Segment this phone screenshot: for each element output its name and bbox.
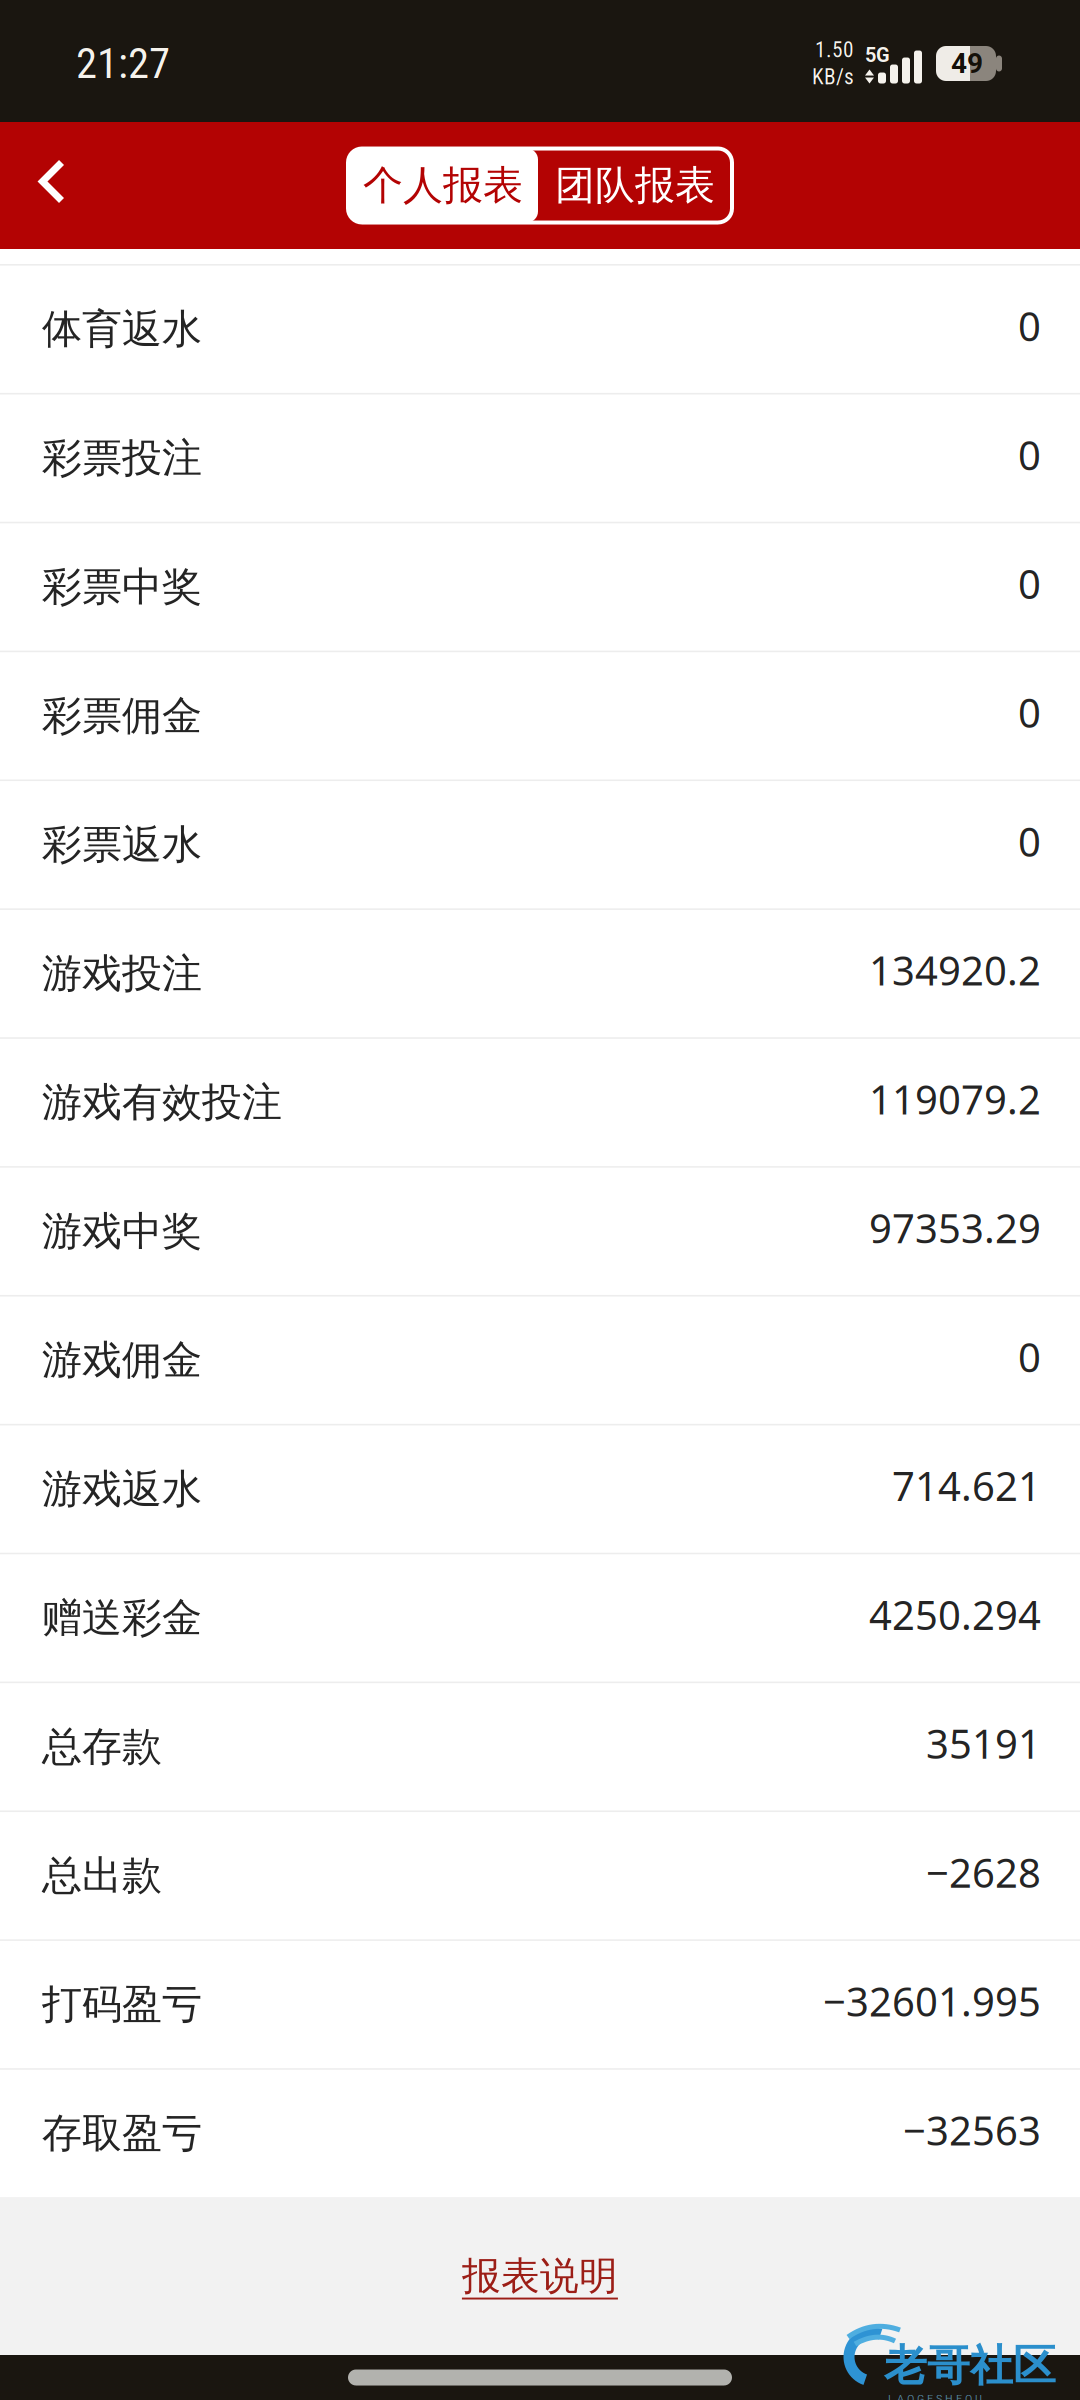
staticText: 119079.2 — [869, 1072, 1041, 1126]
staticText: 49 — [951, 47, 983, 80]
staticText: 彩票佣金 — [42, 691, 202, 741]
staticText: 存取盈亏 — [42, 2108, 202, 2159]
staticText: KB/s — [812, 64, 854, 89]
staticText: 0 — [1018, 427, 1041, 482]
staticText: 97353.29 — [869, 1201, 1041, 1255]
staticText: −32601.995 — [823, 1974, 1041, 2028]
staticText: 总存款 — [42, 1722, 162, 1772]
staticText: 个人报表 — [363, 160, 523, 211]
staticText: 0 — [1018, 1329, 1041, 1384]
staticText: −2628 — [926, 1845, 1041, 1899]
staticText: 0 — [1018, 298, 1041, 353]
staticText: 0 — [1018, 814, 1041, 868]
button[interactable]: 体育返水 — [0, 264, 1080, 393]
button[interactable]: 游戏投注 — [0, 908, 1080, 1037]
button[interactable]: 团队报表 — [538, 148, 732, 222]
staticText: 游戏返水 — [42, 1464, 202, 1514]
staticText: 赠送彩金 — [42, 1593, 202, 1643]
staticText: 总出款 — [42, 1850, 162, 1901]
staticText: 打码盈亏 — [42, 1979, 202, 2030]
staticText: 游戏佣金 — [42, 1335, 202, 1385]
staticText: −32563 — [903, 2103, 1041, 2157]
staticText: L A O G E S H E Q U — [888, 2393, 982, 2400]
staticText: 134920.2 — [869, 943, 1041, 997]
staticText: 游戏投注 — [42, 948, 202, 999]
button[interactable]: 彩票返水 — [0, 779, 1080, 908]
staticText: 0 — [1018, 556, 1041, 611]
button[interactable]: 游戏返水 — [0, 1424, 1080, 1553]
staticText: 游戏有效投注 — [42, 1077, 282, 1128]
button[interactable]: 赠送彩金 — [0, 1553, 1080, 1682]
button[interactable]: 总出款 — [0, 1810, 1080, 1939]
staticText: 35191 — [926, 1716, 1041, 1771]
staticText: 1.50 — [815, 37, 854, 62]
button[interactable]: 游戏有效投注 — [0, 1037, 1080, 1166]
button[interactable]: 存取盈亏 — [0, 2068, 1080, 2197]
button[interactable]: 报表说明 — [452, 2246, 628, 2306]
button[interactable]: 彩票投注 — [0, 393, 1080, 522]
button[interactable]: 游戏中奖 — [0, 1166, 1080, 1295]
staticText: 报表说明 — [462, 2252, 618, 2300]
staticText: 彩票投注 — [42, 433, 202, 483]
staticText: 游戏中奖 — [42, 1206, 202, 1256]
button[interactable]: 彩票中奖 — [0, 522, 1080, 651]
staticText: 老哥社区 — [884, 2339, 1056, 2393]
staticText: 彩票返水 — [42, 819, 202, 870]
button[interactable]: 游戏佣金 — [0, 1295, 1080, 1424]
button[interactable]: 彩票佣金 — [0, 651, 1080, 779]
button[interactable]: 总存款 — [0, 1682, 1080, 1810]
staticText: 21:27 — [76, 38, 170, 88]
staticText: 0 — [1018, 685, 1041, 740]
staticText: 5G — [865, 43, 890, 67]
staticText: 团队报表 — [555, 160, 715, 211]
staticText: 4250.294 — [869, 1587, 1041, 1642]
staticText: 体育返水 — [42, 304, 202, 354]
button[interactable]: Back — [0, 122, 104, 249]
staticText: 714.621 — [892, 1458, 1041, 1513]
staticText: 彩票中奖 — [42, 562, 202, 612]
button[interactable]: 打码盈亏 — [0, 1939, 1080, 2068]
button[interactable]: 个人报表 — [348, 148, 538, 222]
